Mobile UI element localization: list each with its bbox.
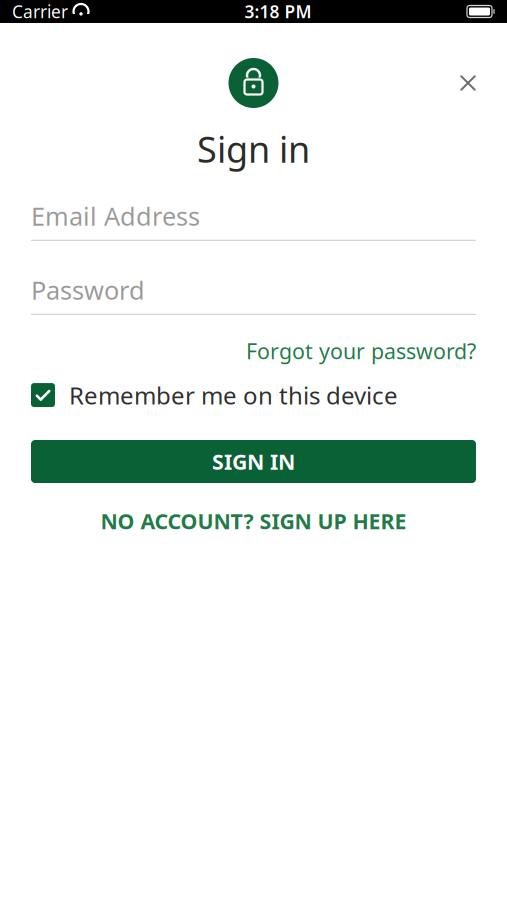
button[interactable]: SIGN IN — [31, 440, 476, 483]
staticText: Remember me on this device — [69, 379, 398, 411]
button[interactable]: Remember me on this device — [31, 379, 476, 411]
staticText: Sign in — [197, 125, 310, 173]
button[interactable]: Forgot your password? — [246, 333, 476, 369]
button[interactable]: Close — [446, 61, 490, 105]
staticText: Forgot your password? — [246, 337, 476, 365]
button[interactable]: NO ACCOUNT? SIGN UP HERE — [31, 504, 476, 538]
staticText: Carrier — [12, 0, 68, 23]
staticText: 3:18 PM — [244, 0, 311, 23]
staticText: Email Address — [31, 199, 200, 233]
staticText: NO ACCOUNT? SIGN UP HERE — [100, 507, 406, 535]
staticText: Password — [31, 273, 145, 307]
staticText: SIGN IN — [212, 447, 295, 476]
